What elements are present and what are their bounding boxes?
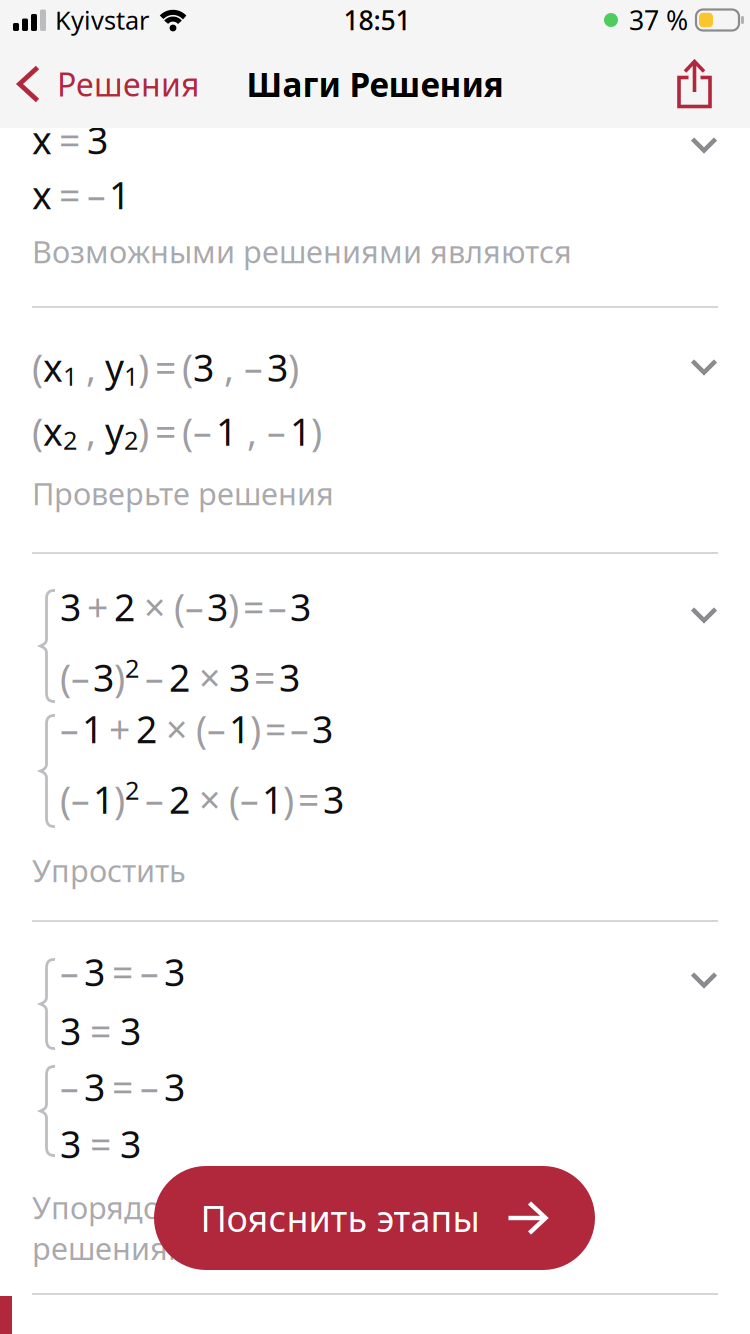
staticText: , — [224, 342, 234, 392]
staticText: 18:51 — [343, 2, 410, 38]
staticText: ( — [32, 406, 43, 456]
staticText: – — [140, 947, 159, 997]
staticText: Упростить — [32, 850, 186, 891]
staticText: – — [185, 582, 204, 632]
button[interactable]: Поделиться — [677, 49, 750, 119]
staticText: ) — [311, 406, 322, 456]
staticText: 1 — [93, 774, 114, 824]
staticText: 1 — [229, 704, 250, 754]
button[interactable]: Пояснить этапы — [154, 1166, 595, 1270]
staticText: = — [90, 1119, 111, 1169]
staticText: + — [109, 704, 130, 754]
staticText: × — [199, 774, 220, 824]
staticText: – — [140, 1062, 159, 1112]
staticText: × — [166, 704, 187, 754]
staticText: ) — [114, 774, 125, 824]
staticText: 2 — [63, 423, 77, 457]
staticText: 3 — [60, 582, 81, 632]
staticText: ( — [174, 582, 185, 632]
staticText: 1 — [109, 170, 130, 220]
staticText: x — [32, 115, 52, 165]
staticText: 3 — [120, 1006, 141, 1056]
staticText: – — [87, 170, 106, 220]
staticText: 3 — [84, 1062, 105, 1112]
staticText: – — [267, 406, 286, 456]
button[interactable]: Развернуть — [680, 596, 728, 634]
staticText: 3 — [164, 947, 185, 997]
staticText: = — [254, 652, 275, 702]
staticText: – — [193, 406, 212, 456]
staticText: 2 — [169, 652, 190, 702]
staticText: Упорядоченные пары являются решениями — [32, 1187, 510, 1268]
staticText: Возможными решениями являются — [32, 231, 572, 272]
staticText: ( — [60, 774, 71, 824]
staticText: 1 — [262, 774, 283, 824]
button[interactable]: Развернуть — [680, 126, 728, 164]
staticText: ) — [288, 342, 299, 392]
staticText: x — [43, 342, 63, 392]
staticText: Kyivstar — [55, 3, 149, 37]
staticText: ) — [283, 774, 294, 824]
staticText: – — [207, 704, 226, 754]
staticText: = — [112, 1062, 133, 1112]
button[interactable]: Развернуть — [680, 961, 728, 999]
staticText: × — [144, 582, 165, 632]
staticText: x — [43, 406, 63, 456]
staticText: Шаги Решения — [246, 62, 503, 106]
staticText: Решения — [57, 63, 199, 105]
staticText: 1 — [124, 359, 138, 393]
staticText: – — [71, 652, 90, 702]
staticText: , — [86, 342, 96, 392]
staticText: = — [243, 582, 264, 632]
staticText: – — [60, 947, 79, 997]
staticText: ( — [182, 406, 193, 456]
staticText: ( — [229, 774, 240, 824]
staticText: 37 % — [629, 2, 688, 38]
staticText: 3 — [60, 1119, 81, 1169]
staticText: = — [59, 115, 80, 165]
staticText: Проверьте решения — [32, 473, 334, 514]
staticText: – — [240, 774, 259, 824]
staticText: , — [247, 406, 257, 456]
staticText: – — [71, 774, 90, 824]
staticText: ) — [114, 652, 125, 702]
staticText: , — [86, 406, 96, 456]
staticText: = — [90, 1006, 111, 1056]
staticText: x — [32, 170, 52, 220]
staticText: = — [265, 704, 286, 754]
staticText: 1 — [216, 406, 237, 456]
staticText: 1 — [63, 359, 77, 393]
staticText: 3 — [229, 652, 250, 702]
staticText: ( — [60, 652, 71, 702]
staticText: ( — [182, 342, 193, 392]
staticText: – — [290, 704, 309, 754]
staticText: – — [60, 704, 79, 754]
staticText: – — [145, 652, 164, 702]
staticText: = — [59, 170, 80, 220]
staticText: ( — [196, 704, 207, 754]
staticText: ) — [138, 342, 149, 392]
staticText: 3 — [84, 947, 105, 997]
button[interactable]: Развернуть — [680, 348, 728, 386]
staticText: 3 — [279, 652, 300, 702]
staticText: 3 — [164, 1062, 185, 1112]
staticText: = — [155, 406, 176, 456]
staticText: 3 — [290, 582, 311, 632]
staticText: ) — [228, 582, 239, 632]
staticText: 3 — [120, 1119, 141, 1169]
staticText: Пояснить этапы — [200, 1194, 479, 1242]
staticText: 3 — [87, 115, 108, 165]
staticText: 3 — [93, 652, 114, 702]
staticText: – — [60, 1062, 79, 1112]
staticText: 2 — [125, 651, 139, 685]
staticText: 3 — [207, 582, 228, 632]
button[interactable]: Решения — [0, 51, 199, 117]
staticText: 3 — [267, 342, 288, 392]
staticText: 2 — [169, 774, 190, 824]
staticText: ( — [32, 342, 43, 392]
staticText: × — [199, 652, 220, 702]
staticText: y — [105, 406, 124, 456]
staticText: = — [155, 342, 176, 392]
staticText: = — [112, 947, 133, 997]
staticText: 3 — [60, 1006, 81, 1056]
